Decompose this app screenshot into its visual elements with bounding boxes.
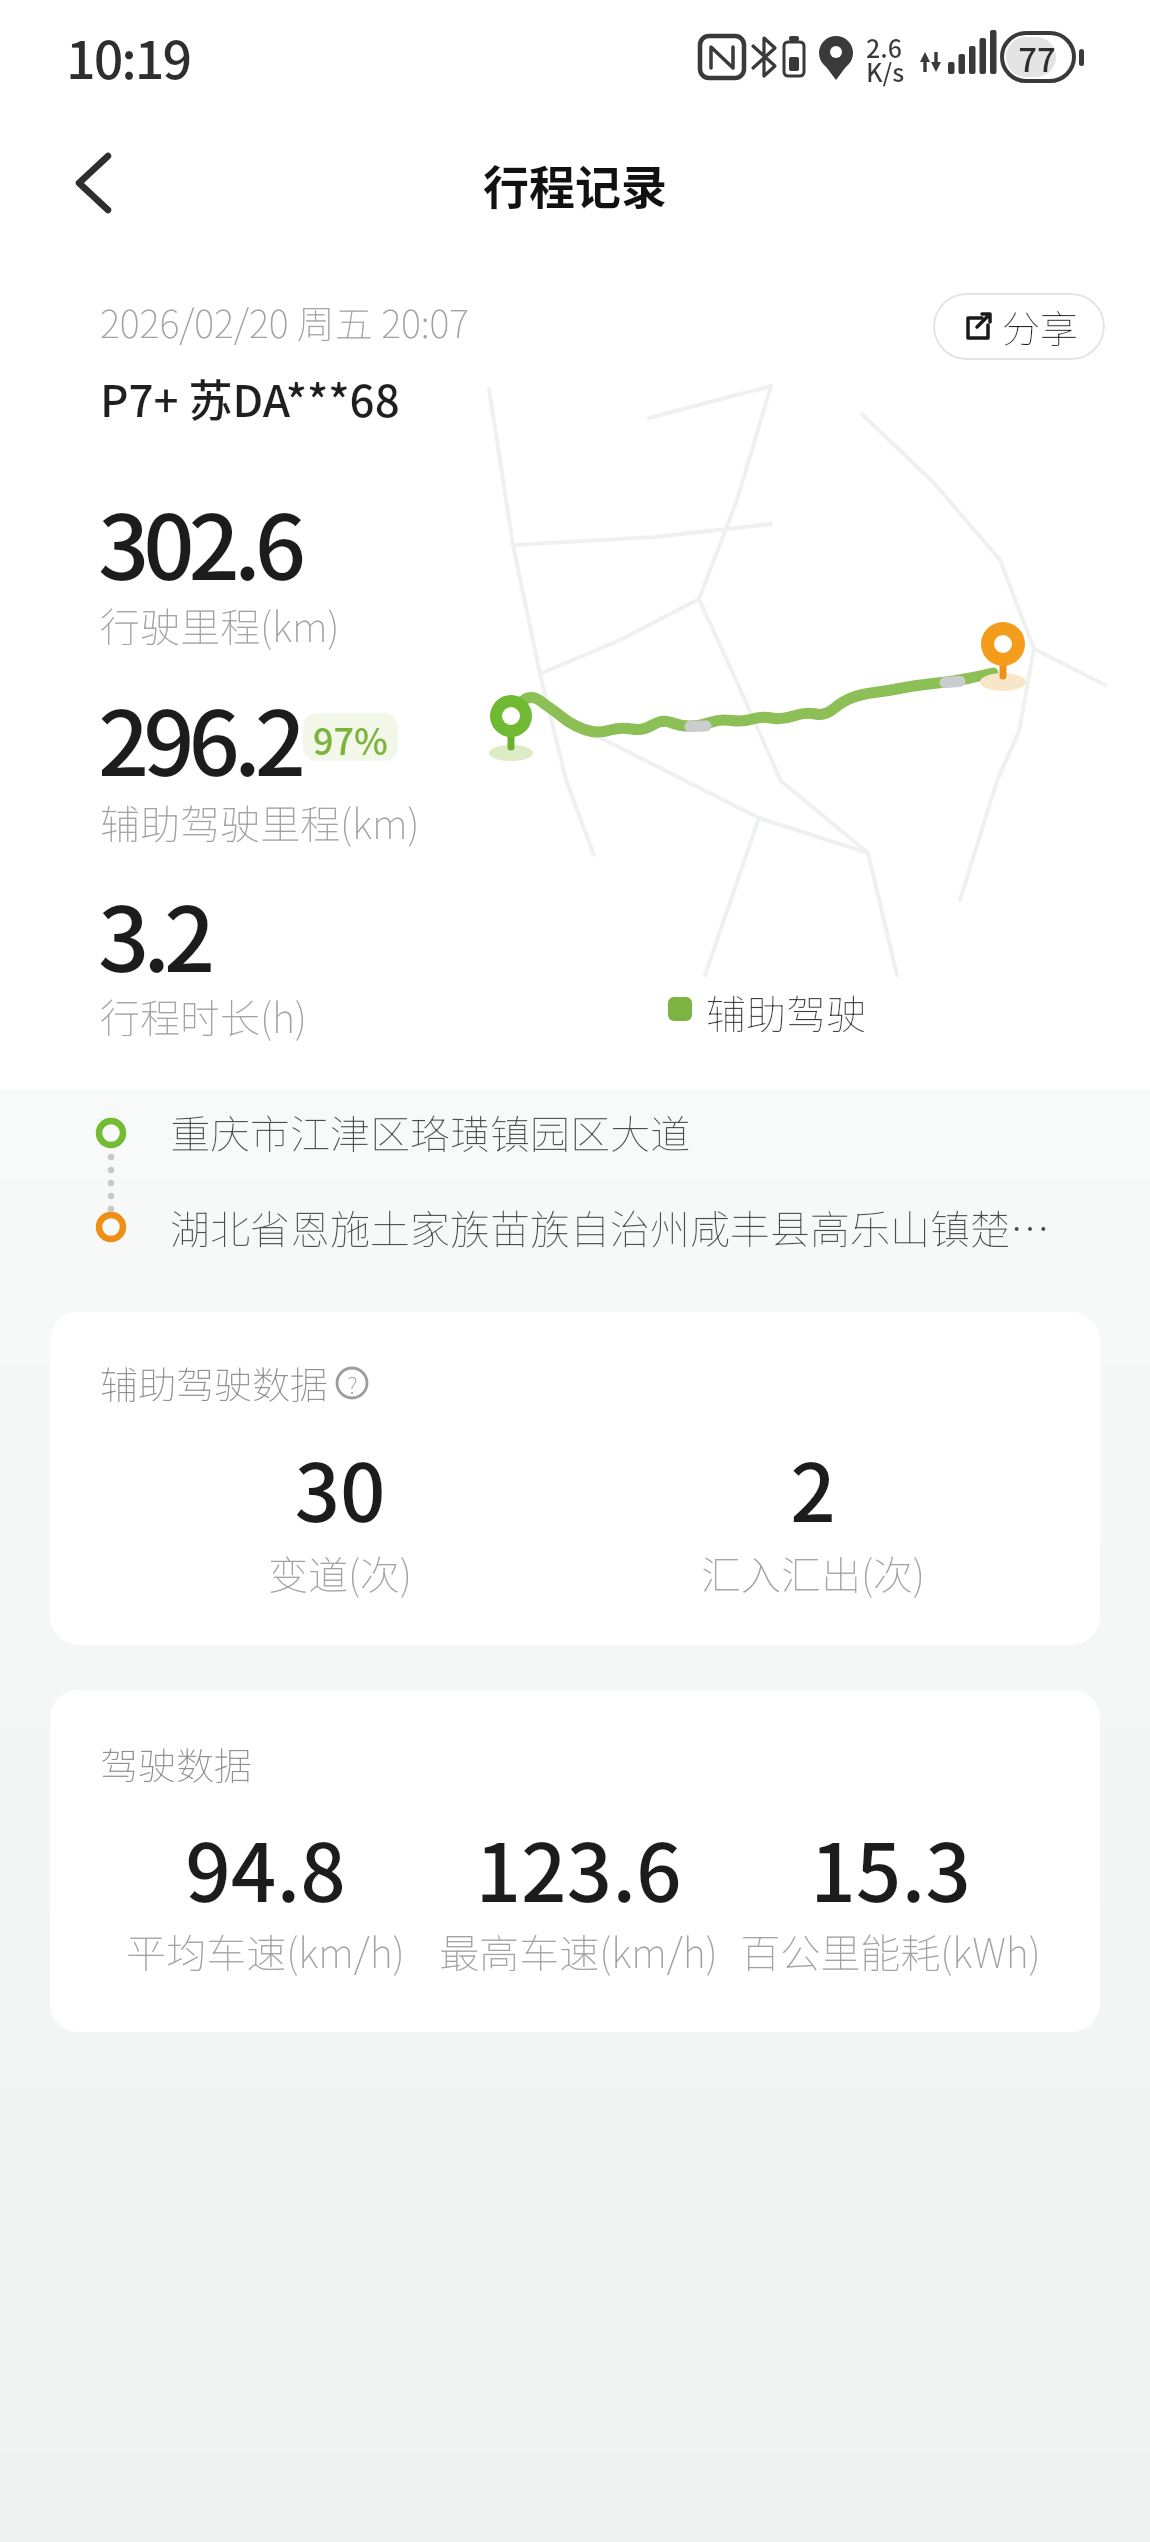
staticText: 30: [294, 1429, 386, 1545]
staticText: 辅助驾驶数据: [100, 1355, 329, 1410]
staticText: 15.3: [810, 1809, 971, 1925]
staticText: ?: [347, 1366, 358, 1401]
staticText: 行程记录: [483, 151, 667, 218]
staticText: 驾驶数据: [100, 1736, 253, 1791]
staticText: 平均车速(km/h): [126, 1922, 405, 1980]
staticText: K/s: [866, 53, 905, 89]
staticText: 重庆市江津区珞璜镇园区大道: [170, 1103, 690, 1161]
staticText: 百公里能耗(kWh): [740, 1922, 1041, 1980]
staticText: 行程时长(h): [100, 987, 307, 1045]
button[interactable]: 分享: [933, 293, 1105, 360]
button[interactable]: [55, 140, 135, 224]
staticText: 3.2: [98, 868, 210, 998]
staticText: 湖北省恩施土家族苗族自治州咸丰县高乐山镇楚…: [170, 1198, 1050, 1256]
staticText: P7+ 苏DA***68: [100, 366, 400, 430]
staticText: 2026/02/20 周五 20:07: [100, 294, 470, 349]
staticText: 最高车速(km/h): [439, 1922, 718, 1980]
staticText: 行驶里程(km): [100, 596, 340, 654]
staticText: 2.6: [866, 29, 902, 65]
staticText: 2: [790, 1429, 836, 1545]
staticText: 辅助驾驶里程(km): [100, 793, 420, 851]
staticText: 汇入汇出(次): [701, 1544, 925, 1602]
staticText: 296.2: [98, 672, 301, 802]
staticText: 变道(次): [268, 1544, 412, 1602]
staticText: 94.8: [185, 1809, 346, 1925]
staticText: 97%: [313, 713, 388, 761]
staticText: 辅助驾驶: [706, 983, 866, 1041]
staticText: 77: [1018, 34, 1056, 82]
staticText: 分享: [1002, 299, 1079, 354]
staticText: 10:19: [66, 19, 191, 94]
staticText: 123.6: [475, 1809, 682, 1925]
staticText: 302.6: [98, 476, 301, 606]
